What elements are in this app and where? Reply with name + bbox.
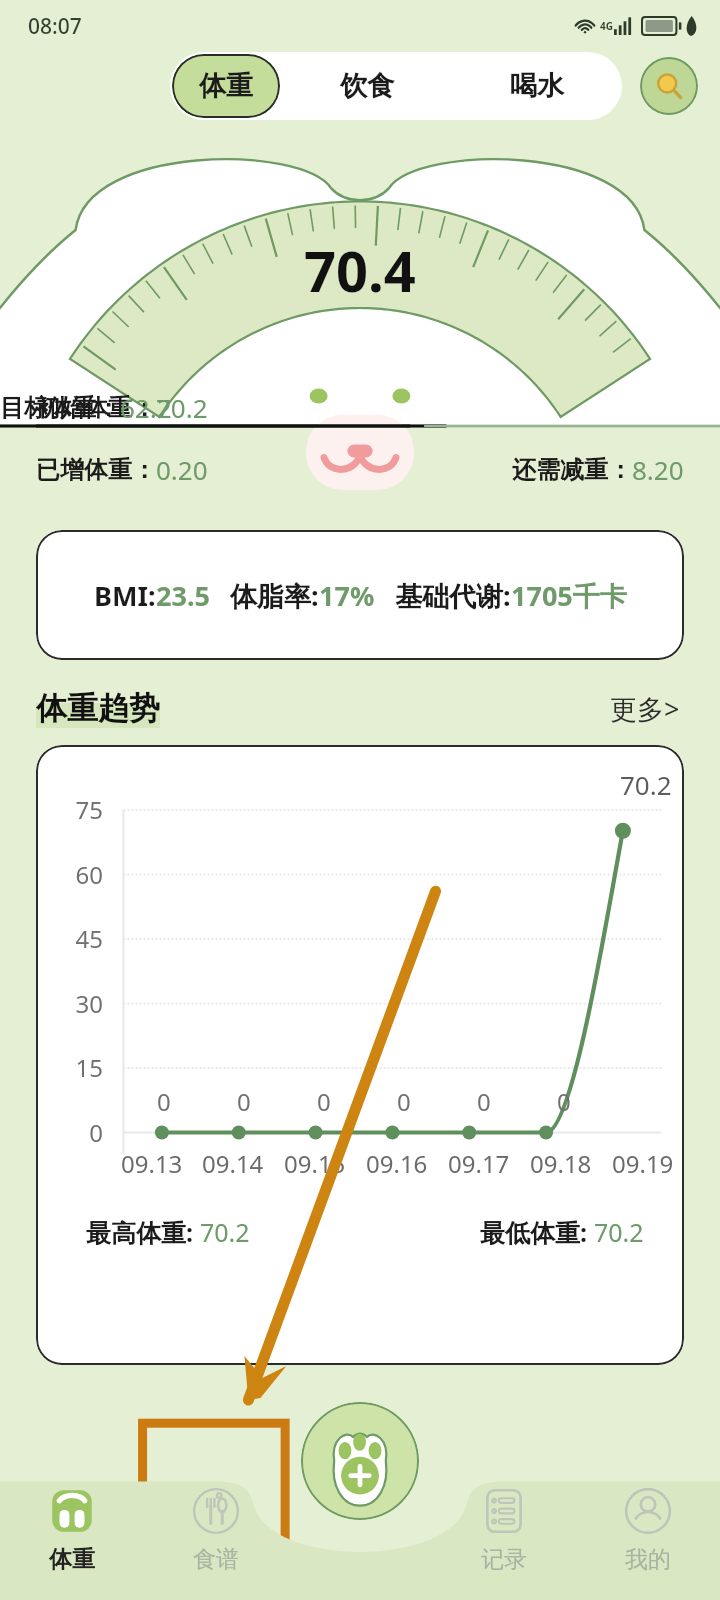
staticText: 60	[36, 858, 103, 891]
staticText: 0	[557, 1085, 571, 1118]
staticText: 基础代谢:	[395, 577, 511, 614]
staticText: 还需减重：	[512, 455, 632, 485]
staticText: 0	[157, 1085, 171, 1118]
staticText: 体脂率:	[230, 577, 319, 614]
button[interactable]: 体重	[172, 54, 280, 118]
staticText: 45	[36, 922, 103, 955]
staticText: 已增体重：	[36, 455, 156, 485]
staticText: 0	[36, 1116, 103, 1149]
staticText: 09.15	[284, 1147, 346, 1180]
staticText: 70.2	[156, 390, 208, 425]
staticText: 23.5	[156, 577, 210, 614]
staticText: 初始体重：	[36, 393, 156, 423]
staticText: 15	[36, 1051, 103, 1084]
staticText: 体重	[49, 1545, 95, 1574]
staticText: 17%	[319, 577, 375, 614]
staticText: 09.17	[448, 1147, 510, 1180]
button[interactable]: BMI:	[36, 530, 684, 660]
staticText: 更多>	[610, 690, 680, 727]
staticText: 0	[317, 1085, 331, 1118]
staticText: 09.19	[612, 1147, 674, 1180]
staticText: 09.16	[366, 1147, 428, 1180]
staticText: 1705千卡	[511, 577, 627, 614]
staticText: 记录	[481, 1545, 527, 1574]
staticText: 0	[397, 1085, 411, 1118]
staticText: 饮食	[340, 69, 394, 103]
button[interactable]: 更多>	[606, 686, 684, 731]
staticText: 09.13	[121, 1147, 183, 1180]
staticText: 4G	[600, 19, 613, 33]
staticText: 0.20	[156, 452, 208, 487]
staticText: 我的	[625, 1545, 671, 1574]
staticText: 09.14	[202, 1147, 264, 1180]
staticText: 8.20	[632, 452, 684, 487]
button[interactable]: 喝水	[452, 52, 622, 120]
staticText: 09.18	[530, 1147, 592, 1180]
button[interactable]: 体重	[0, 1440, 144, 1600]
staticText: 70.4	[304, 232, 416, 308]
staticText: 0	[237, 1085, 251, 1118]
staticText: 体重	[199, 69, 253, 103]
staticText: 最低体重:	[480, 1215, 594, 1249]
staticText: 食谱	[193, 1545, 239, 1574]
button[interactable]: 饮食	[282, 52, 452, 120]
button[interactable]: 我的	[576, 1440, 720, 1600]
button[interactable]: 添加记录	[301, 1402, 419, 1520]
button[interactable]: 食谱	[144, 1440, 288, 1600]
staticText: 70.2	[620, 767, 672, 802]
staticText: BMI:	[94, 577, 156, 614]
staticText: 喝水	[510, 69, 564, 103]
staticText: 08:07	[28, 12, 82, 41]
staticText: 0	[477, 1085, 491, 1118]
staticText: 70.2	[200, 1215, 250, 1249]
staticText: 62.2	[120, 390, 172, 425]
button[interactable]: 记录	[432, 1440, 576, 1600]
staticText: 70.2	[594, 1215, 644, 1249]
staticText: 目标体重：	[0, 393, 120, 423]
staticText: 体重趋势	[36, 689, 160, 728]
staticText: 最高体重:	[86, 1215, 200, 1249]
button[interactable]: 搜索	[640, 57, 698, 115]
staticText: 75	[36, 793, 103, 826]
staticText: 30	[36, 987, 103, 1020]
